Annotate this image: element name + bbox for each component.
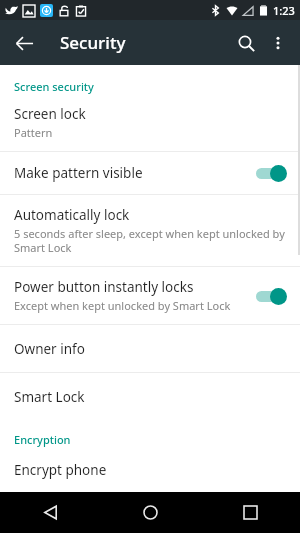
staticText: 5 seconds after sleep, except when kept …	[14, 226, 286, 255]
staticText: Power button instantly locks	[14, 278, 194, 296]
staticText: Owner info	[14, 340, 85, 358]
button[interactable]: Encrypt phone	[0, 447, 300, 492]
staticText: Except when kept unlocked by Smart Lock	[14, 298, 231, 313]
staticText: Encryption	[14, 432, 71, 447]
button[interactable]: Recent apps	[200, 492, 300, 533]
staticText: Smart Lock	[14, 388, 85, 406]
button[interactable]: Home	[100, 492, 200, 533]
button[interactable]: Screen lock	[0, 94, 300, 151]
staticText: 1:23	[273, 3, 295, 18]
button[interactable]: Make pattern visible	[0, 152, 300, 194]
staticText: Pattern	[14, 125, 53, 140]
staticText: Encrypt phone	[14, 461, 107, 479]
staticText: Automatically lock	[14, 206, 130, 224]
button[interactable]: Back	[0, 492, 100, 533]
staticText: Security	[60, 31, 126, 54]
button[interactable]: Owner info	[0, 325, 300, 372]
staticText: Make pattern visible	[14, 164, 143, 182]
button[interactable]: Automatically lock	[0, 195, 300, 266]
button[interactable]: More options	[262, 27, 294, 59]
button[interactable]: Smart Lock	[0, 373, 300, 420]
button[interactable]: Search	[230, 27, 262, 59]
button[interactable]: Power button instantly locks	[0, 267, 300, 324]
staticText: Screen lock	[14, 105, 86, 123]
staticText: Screen security	[14, 79, 94, 94]
button[interactable]: Back	[8, 27, 40, 59]
